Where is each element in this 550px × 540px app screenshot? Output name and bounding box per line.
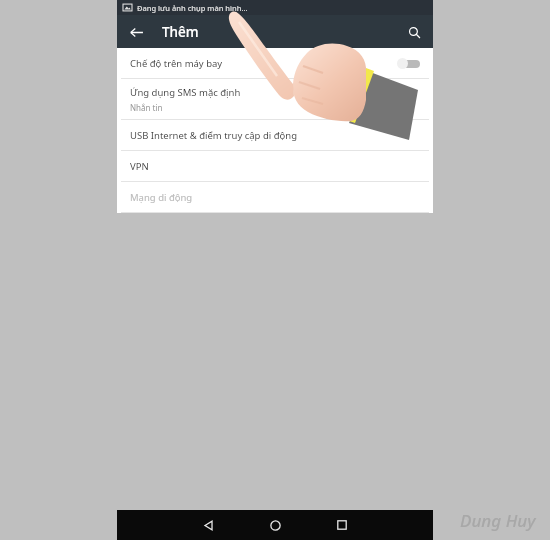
staticText: Dung Huy (460, 509, 536, 532)
button[interactable]: Recent apps (329, 512, 355, 538)
staticText: Mạng di động (130, 191, 193, 204)
button[interactable]: VPN (117, 151, 433, 181)
staticText: Đang lưu ảnh chụp màn hình... (137, 3, 248, 13)
button[interactable]: Back (121, 17, 151, 47)
staticText: Ứng dụng SMS mặc định (130, 86, 241, 99)
staticText: Chế độ trên máy bay (130, 57, 223, 70)
staticText: Nhắn tin (130, 102, 163, 113)
staticText: VPN (130, 160, 149, 173)
button[interactable]: USB Internet & điểm truy cập di động (117, 120, 433, 150)
button[interactable]: Ứng dụng SMS mặc định (117, 79, 433, 119)
staticText: USB Internet & điểm truy cập di động (130, 129, 298, 142)
button[interactable]: Back (195, 512, 221, 538)
button[interactable]: Search (399, 17, 429, 47)
button[interactable]: Home (262, 512, 288, 538)
button[interactable]: Chế độ trên máy bay (117, 48, 433, 78)
button[interactable]: Mạng di động (117, 182, 433, 212)
staticText: Thêm (162, 23, 199, 41)
